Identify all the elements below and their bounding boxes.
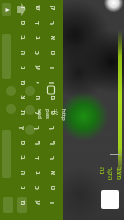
staticText: ר: [48, 156, 56, 160]
staticText: ן: [48, 82, 56, 84]
button[interactable]: ו: [47, 197, 57, 209]
staticText: ע: [33, 65, 41, 70]
button[interactable]: Shift: [2, 3, 11, 16]
button[interactable]: ן: [47, 77, 57, 89]
staticText: ל: [33, 111, 41, 115]
button[interactable]: Option: [25, 125, 35, 135]
staticText: צ: [18, 95, 26, 100]
staticText: י: [33, 82, 41, 84]
staticText: א: [48, 170, 56, 175]
staticText: נ: [18, 186, 26, 189]
button[interactable]: ל: [32, 107, 42, 119]
button[interactable]: ר: [47, 152, 57, 164]
staticText: נ: [18, 66, 26, 69]
staticText: כ: [33, 51, 41, 55]
staticText: ו: [48, 67, 56, 69]
staticText: א: [48, 35, 56, 40]
button[interactable]: Capture: [101, 190, 119, 209]
staticText: מ: [18, 80, 26, 85]
staticText: ה: [18, 50, 26, 55]
staticText: ס: [18, 20, 26, 25]
button[interactable]: Upload: [3, 197, 13, 213]
button[interactable]: ב: [17, 152, 27, 164]
button[interactable]: ט: [47, 182, 57, 194]
button[interactable]: ג: [32, 167, 42, 179]
button[interactable]: ר: [47, 17, 57, 29]
button[interactable]: Option: [6, 86, 16, 96]
staticText: ג: [33, 171, 41, 174]
staticText: ב: [18, 155, 26, 160]
staticText: ד: [33, 156, 41, 160]
button[interactable]: ו: [47, 62, 57, 74]
staticText: ת: [18, 110, 26, 115]
staticText: כ: [33, 186, 41, 190]
staticText: ע: [33, 200, 41, 205]
button[interactable]: א: [47, 32, 57, 44]
staticText: ה: [18, 170, 26, 175]
staticText: פ: [48, 110, 56, 115]
button[interactable]: ח: [32, 92, 42, 104]
staticText: ץ: [18, 126, 26, 130]
button[interactable]: ס: [17, 17, 27, 29]
staticText: ש: [33, 5, 41, 10]
button[interactable]: ה: [17, 167, 27, 179]
staticText: ד: [33, 21, 41, 25]
button[interactable]: כ: [32, 47, 42, 59]
button[interactable]: א: [47, 167, 57, 179]
button[interactable]: ך: [32, 122, 42, 134]
button[interactable]: ה: [17, 47, 27, 59]
staticText: ך: [48, 126, 56, 130]
button[interactable]: נ: [17, 62, 27, 74]
button[interactable]: ץ: [17, 122, 27, 134]
button[interactable]: Option: [25, 86, 35, 96]
button[interactable]: Option: [6, 104, 16, 114]
staticText: מ: [18, 200, 26, 205]
staticText: ג: [33, 36, 41, 39]
button[interactable]: ט: [47, 47, 57, 59]
staticText: ף: [48, 140, 56, 145]
button[interactable]: ף: [47, 137, 57, 149]
button[interactable]: ז: [17, 2, 27, 14]
staticText: ו: [48, 202, 56, 204]
staticText: ך: [33, 126, 41, 130]
button[interactable]: Enter: [14, 2, 26, 17]
button[interactable]: מ: [17, 77, 27, 89]
button[interactable]: Option: [25, 105, 35, 115]
button[interactable]: Slides: [46, 84, 58, 96]
button[interactable]: ס: [17, 137, 27, 149]
staticText: ר: [48, 21, 56, 25]
button[interactable]: ף: [32, 137, 42, 149]
button[interactable]: ש: [32, 2, 42, 14]
staticText: http://passed: [36, 109, 68, 121]
staticText: ס: [18, 140, 26, 145]
button[interactable]: מ: [17, 197, 27, 209]
button[interactable]: Mail: [17, 197, 27, 213]
staticText: ם: [48, 95, 56, 100]
button[interactable]: כ: [32, 182, 42, 194]
staticText: ט: [48, 50, 56, 55]
button[interactable]: צ: [17, 92, 27, 104]
button[interactable]: ך: [47, 122, 57, 134]
staticText: ב: [18, 35, 26, 40]
button[interactable]: ת: [17, 107, 27, 119]
button[interactable]: ג: [32, 32, 42, 44]
button[interactable]: ק: [47, 2, 57, 14]
staticText: ז: [18, 6, 26, 9]
button[interactable]: ד: [32, 17, 42, 29]
button[interactable]: ב: [17, 32, 27, 44]
button[interactable]: פ: [47, 107, 57, 119]
button[interactable]: י: [32, 77, 42, 89]
button[interactable]: ע: [32, 197, 42, 209]
staticText: ח: [33, 95, 41, 100]
button[interactable]: ם: [47, 92, 57, 104]
staticText: ק: [48, 5, 56, 10]
staticText: מצב הקרנה: [98, 167, 124, 181]
staticText: ט: [48, 185, 56, 190]
button[interactable]: ד: [32, 152, 42, 164]
staticText: ף: [33, 140, 41, 145]
button[interactable]: ע: [32, 62, 42, 74]
button[interactable]: נ: [17, 182, 27, 194]
